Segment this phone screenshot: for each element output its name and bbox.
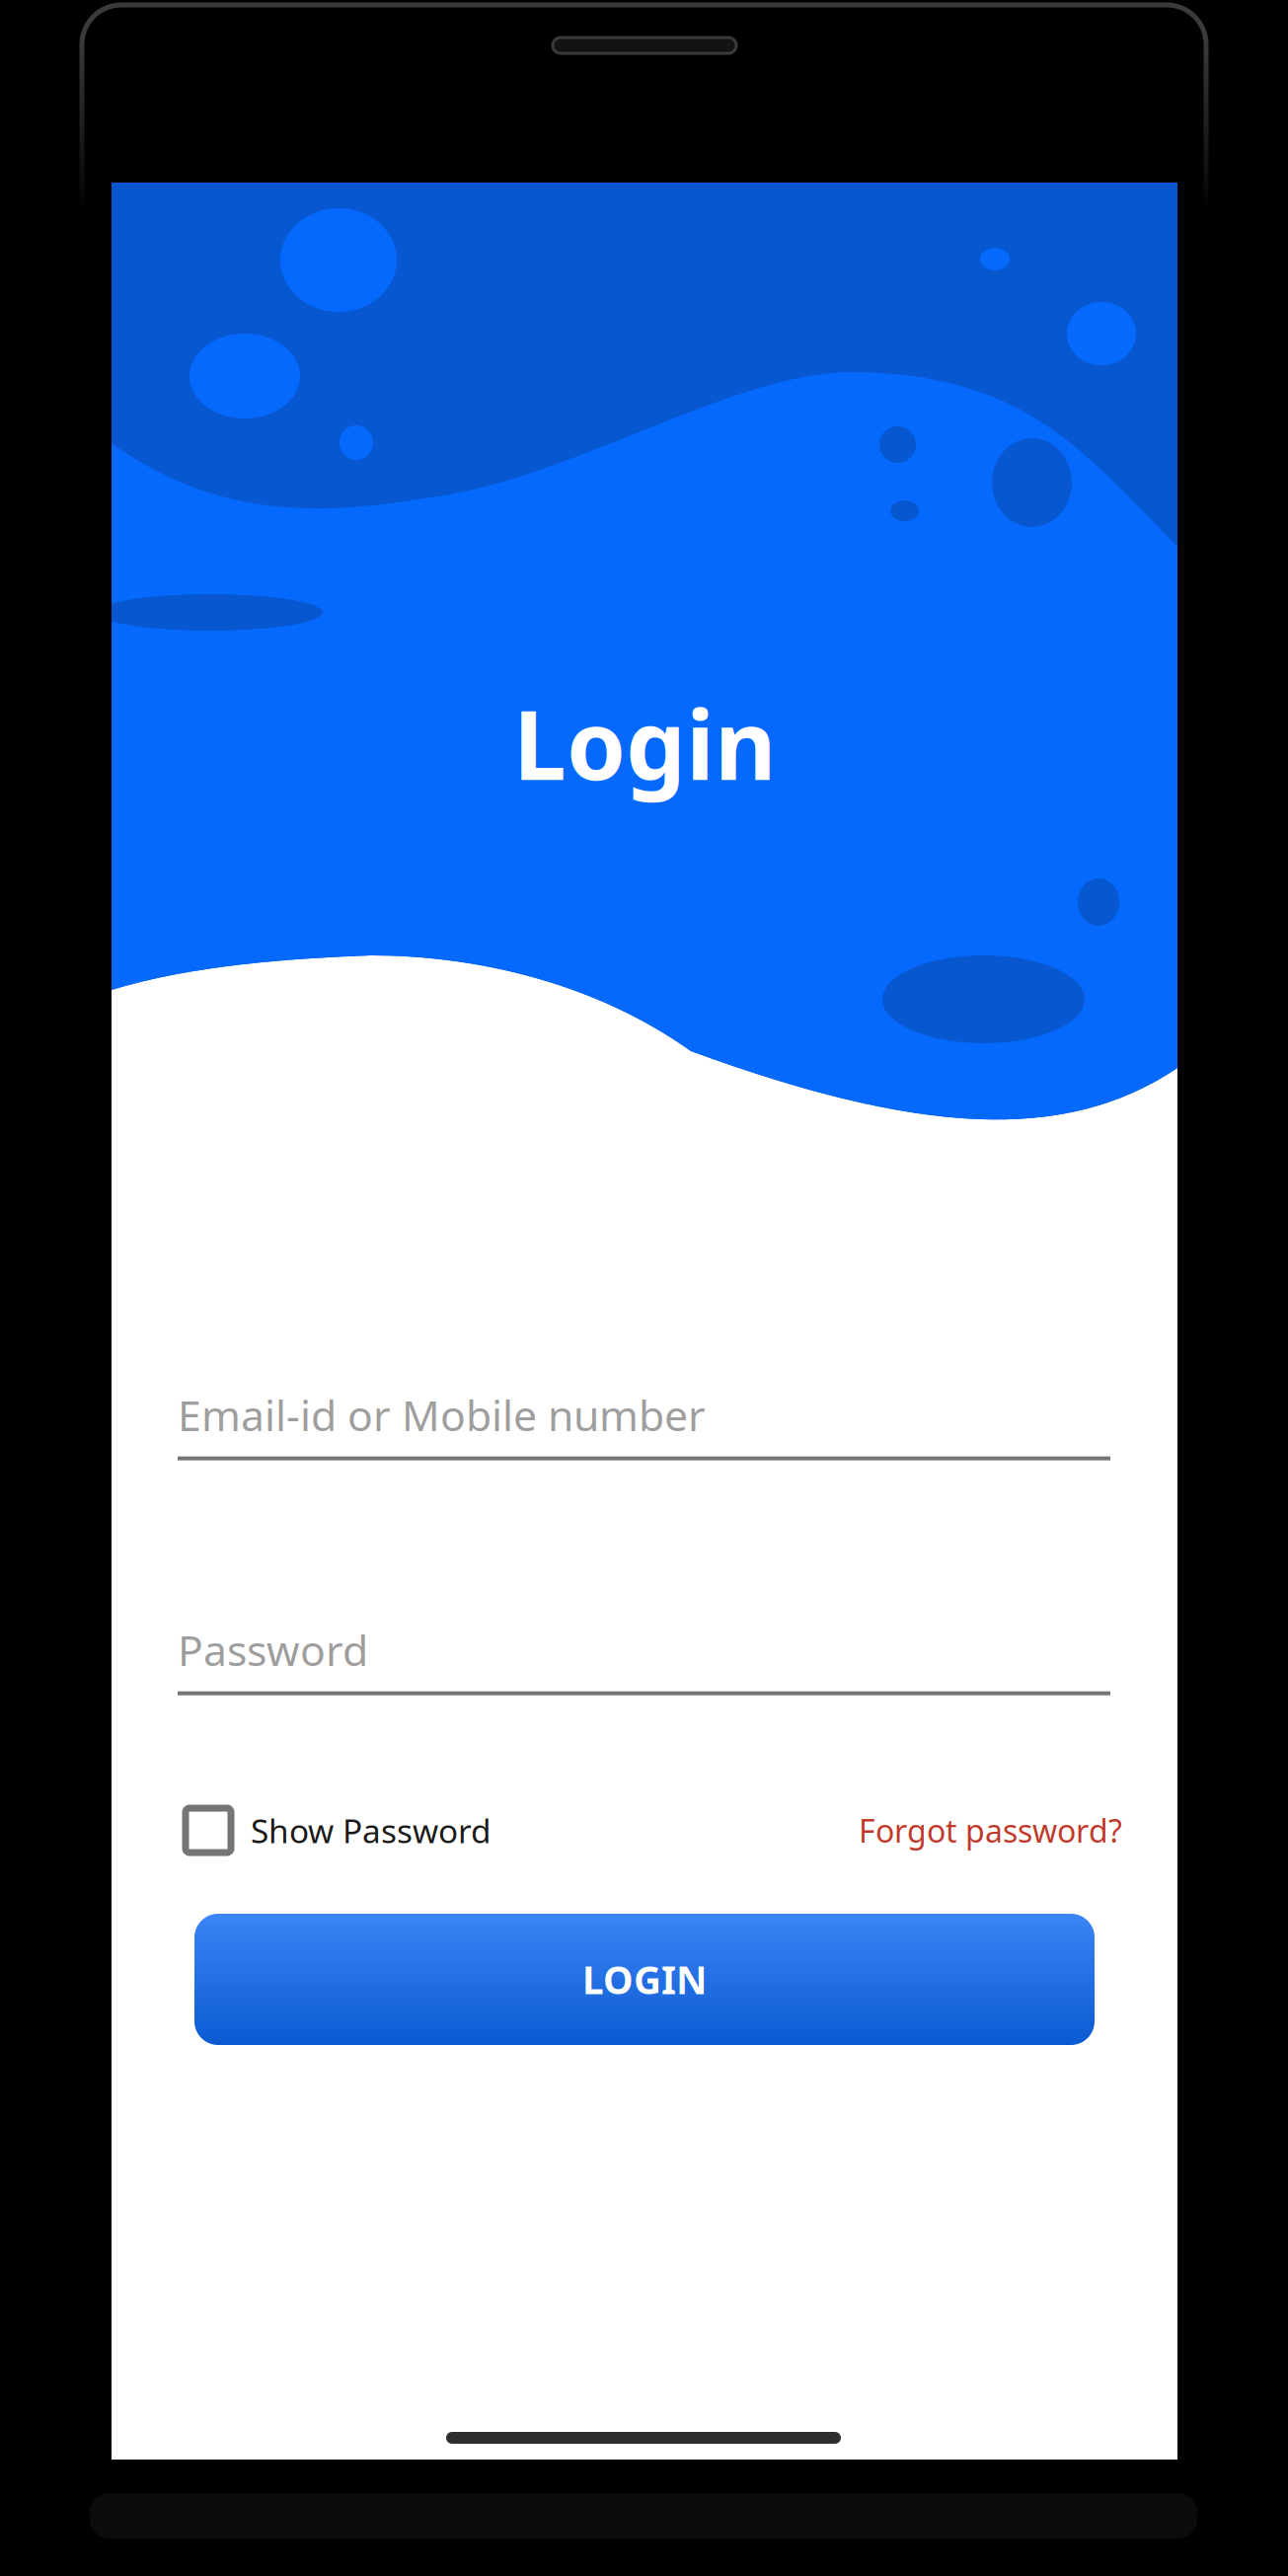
staticText: LOGIN bbox=[582, 1954, 707, 2005]
button[interactable]: LOGIN bbox=[194, 1914, 1095, 2045]
staticText: Email-id or Mobile number bbox=[178, 1387, 706, 1443]
staticText: Show Password bbox=[251, 1809, 492, 1852]
staticText: Password bbox=[178, 1622, 368, 1678]
staticText: Forgot password? bbox=[859, 1809, 1122, 1851]
button[interactable]: Show Password bbox=[186, 1808, 492, 1853]
button[interactable]: Forgot password? bbox=[859, 1809, 1122, 1851]
staticText: Login bbox=[513, 680, 776, 806]
